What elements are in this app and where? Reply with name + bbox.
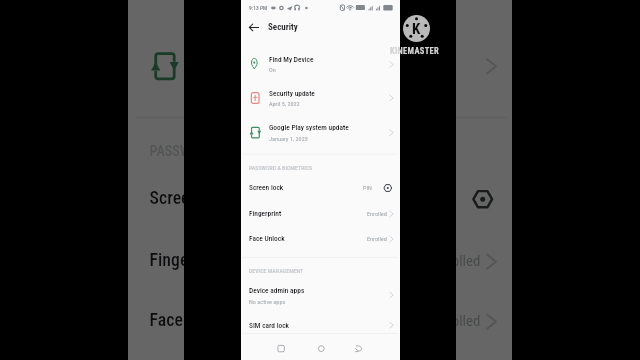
staticText: K xyxy=(412,20,421,38)
button[interactable] xyxy=(130,170,184,230)
button[interactable]: Recents xyxy=(272,340,290,358)
staticText: Fingerprint xyxy=(150,250,184,271)
staticText: Fingerprint xyxy=(249,209,282,218)
staticText: SIM card lock xyxy=(249,321,290,330)
staticText: Face Unlock xyxy=(249,234,285,243)
button[interactable] xyxy=(130,233,184,293)
button[interactable] xyxy=(456,170,512,230)
button[interactable] xyxy=(241,227,400,252)
staticText: On xyxy=(269,66,276,73)
button[interactable]: Screen lock options xyxy=(464,178,507,221)
staticText: Enrolled xyxy=(456,312,481,329)
button[interactable]: Back xyxy=(245,19,263,37)
staticText: April 5, 2022 xyxy=(269,100,300,107)
staticText: 9:13 PM xyxy=(249,5,268,11)
button[interactable] xyxy=(241,113,400,146)
staticText: KINEMASTER xyxy=(390,46,440,56)
button[interactable]: Back xyxy=(351,340,369,358)
button[interactable]: Screen lock options xyxy=(380,179,398,197)
staticText: Security xyxy=(268,22,298,33)
button[interactable] xyxy=(130,19,184,98)
button[interactable] xyxy=(241,313,400,338)
staticText: January 1, 2023 xyxy=(269,135,308,142)
staticText: DEVICE MANAGEMENT xyxy=(249,268,304,275)
staticText: Face Unlock xyxy=(150,310,184,331)
staticText: Find My Device xyxy=(269,55,314,64)
staticText: Enrolled xyxy=(367,210,387,217)
staticText: PASSWORD & BIOMETRICS xyxy=(150,144,184,161)
staticText: Screen lock xyxy=(249,183,284,192)
button[interactable] xyxy=(241,46,400,79)
button[interactable] xyxy=(130,293,184,353)
button[interactable] xyxy=(456,233,512,293)
staticText: Security update xyxy=(269,89,315,98)
button[interactable] xyxy=(241,277,400,310)
button[interactable] xyxy=(241,79,400,112)
button[interactable] xyxy=(456,293,512,353)
staticText: Google Play system update xyxy=(269,123,349,132)
staticText: PASSWORD & BIOMETRICS xyxy=(249,165,313,172)
staticText: PIN xyxy=(363,184,372,191)
staticText: Screen lock xyxy=(150,187,184,209)
button[interactable] xyxy=(241,176,400,201)
button[interactable]: Home xyxy=(312,340,330,358)
staticText: Device admin apps xyxy=(249,286,305,295)
staticText: No active apps xyxy=(249,298,286,305)
staticText: Enrolled xyxy=(367,235,387,242)
button[interactable] xyxy=(241,202,400,227)
staticText: Enrolled xyxy=(456,252,481,269)
